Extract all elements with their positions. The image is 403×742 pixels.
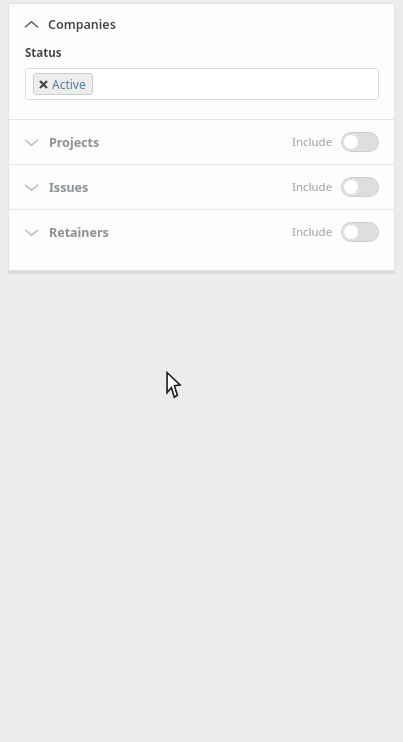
other: Expand section xyxy=(25,228,38,237)
other: Expand section xyxy=(25,183,38,192)
staticText: Include xyxy=(292,179,333,195)
button[interactable]: Expand section xyxy=(8,210,395,254)
button[interactable]: Expand section xyxy=(8,120,395,164)
other: Expand section xyxy=(25,138,38,147)
staticText: Projects xyxy=(49,134,100,151)
staticText: Active xyxy=(52,76,86,92)
button[interactable]: Include toggle, off xyxy=(341,222,379,242)
staticText: Include xyxy=(292,224,333,240)
button[interactable]: Active xyxy=(25,68,379,100)
staticText: Include xyxy=(292,134,333,150)
other: Collapse section xyxy=(25,20,38,29)
staticText: Retainers xyxy=(49,224,109,241)
staticText: Companies xyxy=(48,16,116,33)
button[interactable]: Collapse section xyxy=(8,3,395,45)
button[interactable]: Include toggle, off xyxy=(341,177,379,197)
button[interactable]: Include toggle, off xyxy=(341,132,379,152)
button[interactable]: Expand section xyxy=(8,165,395,209)
button[interactable]: Active xyxy=(33,73,93,95)
staticText: Status xyxy=(25,45,62,61)
staticText: Issues xyxy=(49,179,89,196)
